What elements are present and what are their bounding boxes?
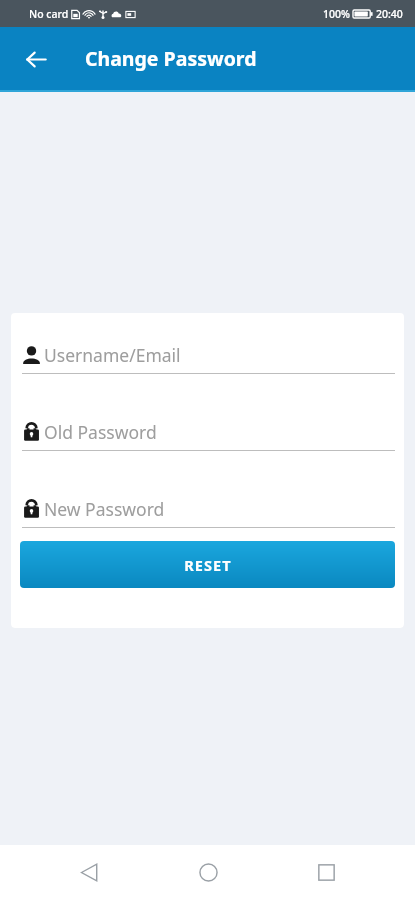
staticText: 20:40 <box>376 7 403 21</box>
staticText: Change Password <box>85 45 257 72</box>
staticText: Old Password <box>44 420 157 444</box>
staticText: RESET <box>184 555 232 575</box>
button[interactable]: Old Password <box>20 420 395 451</box>
button[interactable]: Recent apps <box>297 845 355 900</box>
staticText: 100% <box>323 7 350 21</box>
staticText: No card <box>29 7 69 21</box>
staticText: Username/Email <box>44 343 181 367</box>
button[interactable]: Back <box>16 39 56 79</box>
button[interactable]: Back <box>60 845 118 900</box>
button[interactable]: Home <box>179 845 237 900</box>
staticText: New Password <box>44 497 165 521</box>
button[interactable]: Username/Email <box>20 343 395 374</box>
button[interactable]: New Password <box>20 497 395 528</box>
button[interactable]: RESET <box>20 541 395 588</box>
